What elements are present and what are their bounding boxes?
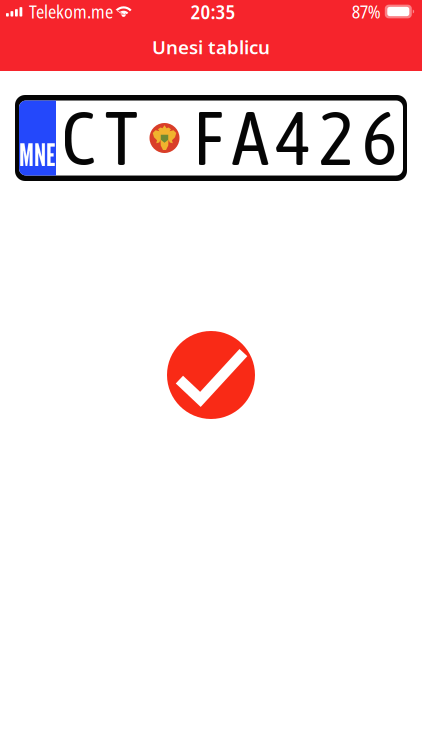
staticText: A <box>232 95 269 181</box>
staticText: 2 <box>319 95 354 181</box>
staticText: MNE <box>19 137 56 173</box>
staticText: 6 <box>362 95 397 181</box>
staticText: C <box>61 95 95 181</box>
staticText: 87% <box>352 0 381 24</box>
button[interactable]: MNE <box>15 95 407 181</box>
staticText: T <box>105 95 138 181</box>
staticText: 20:35 <box>190 0 235 25</box>
staticText: F <box>192 95 222 181</box>
staticText: Telekom.me <box>29 0 113 24</box>
staticText: Unesi tablicu <box>152 35 270 59</box>
staticText: 4 <box>276 95 311 181</box>
